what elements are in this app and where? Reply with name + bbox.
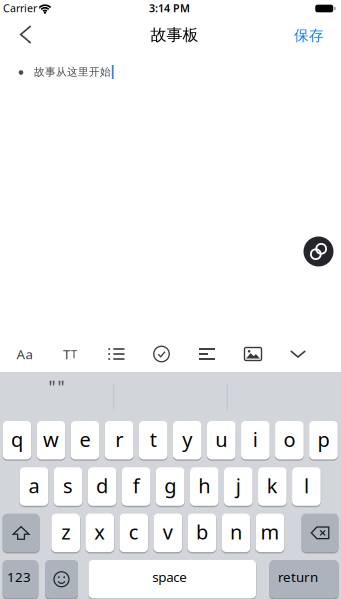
staticText: i xyxy=(253,426,258,453)
button[interactable]: Back xyxy=(5,18,45,50)
staticText: w xyxy=(43,426,59,453)
staticText: 123 xyxy=(7,568,31,586)
staticText: m xyxy=(260,519,279,545)
staticText: " xyxy=(57,375,64,398)
staticText: e xyxy=(80,426,91,453)
staticText: q xyxy=(11,426,23,453)
button[interactable]: Text size xyxy=(53,339,87,369)
button[interactable]: " xyxy=(6,369,106,405)
staticText: f xyxy=(133,472,140,499)
button[interactable]: d xyxy=(88,467,116,506)
staticText: space xyxy=(152,568,187,586)
button[interactable]: p xyxy=(309,421,338,459)
button[interactable]: Delete xyxy=(302,514,338,552)
button[interactable]: Emoji xyxy=(45,560,78,598)
staticText: " xyxy=(48,375,55,398)
staticText: d xyxy=(96,472,108,499)
button[interactable]: v xyxy=(153,514,182,552)
button[interactable]: return xyxy=(269,560,338,598)
button[interactable]: Shift xyxy=(3,514,39,552)
button[interactable]: q xyxy=(3,421,31,459)
button[interactable]: s xyxy=(54,467,82,506)
staticText: l xyxy=(304,472,309,499)
staticText: 故事从这里开始 xyxy=(34,65,111,78)
button[interactable]: o xyxy=(275,421,304,459)
staticText: c xyxy=(129,519,139,545)
button[interactable]: c xyxy=(119,514,148,552)
button[interactable]: Checklist xyxy=(144,339,178,369)
button[interactable]: Alignment xyxy=(190,339,224,369)
staticText: T xyxy=(63,345,70,363)
staticText: T xyxy=(71,347,77,361)
button[interactable]: w xyxy=(37,421,65,459)
button[interactable]: l xyxy=(292,467,321,506)
staticText: s xyxy=(63,472,73,499)
button[interactable]: e xyxy=(71,421,99,459)
button[interactable]: space xyxy=(88,560,256,598)
button[interactable]: r xyxy=(105,421,133,459)
staticText: Carrier xyxy=(3,1,37,15)
button[interactable]: List xyxy=(99,339,133,369)
button[interactable]: x xyxy=(85,514,114,552)
staticText: n xyxy=(230,519,242,545)
staticText: Aa xyxy=(16,345,32,363)
button[interactable]: h xyxy=(190,467,218,506)
button[interactable]: b xyxy=(188,514,216,552)
button[interactable]: k xyxy=(258,467,287,506)
button[interactable]: m xyxy=(256,514,284,552)
staticText: u xyxy=(215,426,227,453)
staticText: 故事板 xyxy=(150,25,198,45)
staticText: 3:14 PM xyxy=(149,1,190,15)
staticText: z xyxy=(61,519,70,545)
staticText: return xyxy=(278,568,318,586)
staticText: j xyxy=(236,472,241,499)
staticText: o xyxy=(283,426,295,453)
staticText: h xyxy=(198,472,210,499)
staticText: g xyxy=(164,472,176,499)
staticText: r xyxy=(115,426,123,453)
button[interactable]: 保存 xyxy=(287,19,331,51)
staticText: x xyxy=(94,519,105,545)
button[interactable]: j xyxy=(224,467,253,506)
button[interactable]: 123 xyxy=(3,560,38,598)
staticText: 保存 xyxy=(294,26,324,44)
button[interactable]: y xyxy=(173,421,201,459)
button[interactable]: a xyxy=(20,467,48,506)
button[interactable]: n xyxy=(222,514,250,552)
button[interactable]: u xyxy=(207,421,236,459)
button[interactable]: Insert image xyxy=(236,339,270,369)
button[interactable]: Text style xyxy=(7,339,41,369)
button[interactable]: t xyxy=(139,421,167,459)
staticText: v xyxy=(163,519,173,545)
button[interactable]: i xyxy=(241,421,270,459)
staticText: b xyxy=(196,519,208,545)
staticText: p xyxy=(317,426,329,453)
button[interactable]: Dismiss keyboard xyxy=(281,339,315,369)
button[interactable]: Insert link xyxy=(303,236,333,266)
button[interactable]: z xyxy=(51,514,80,552)
staticText: k xyxy=(267,472,278,499)
button[interactable]: f xyxy=(122,467,150,506)
staticText: a xyxy=(28,472,39,499)
staticText: y xyxy=(182,426,192,453)
staticText: t xyxy=(150,426,157,453)
button[interactable]: g xyxy=(156,467,184,506)
